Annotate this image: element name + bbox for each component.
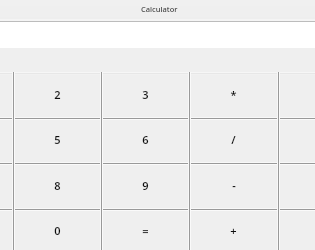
- button[interactable]: Key *: [189, 73, 278, 118]
- staticText: 9: [142, 178, 149, 193]
- staticText: 5: [54, 132, 61, 147]
- button[interactable]: Key 3: [101, 73, 189, 118]
- button[interactable]: Key 4: [0, 118, 13, 163]
- staticText: 3: [142, 87, 149, 102]
- staticText: 8: [54, 178, 61, 193]
- staticText: -: [232, 178, 236, 193]
- staticText: +: [230, 223, 237, 238]
- staticText: 0: [54, 223, 61, 238]
- button[interactable]: Key -: [189, 163, 278, 209]
- button[interactable]: Key 9: [101, 163, 189, 209]
- button[interactable]: Key +: [189, 209, 278, 250]
- staticText: /: [231, 132, 236, 147]
- button[interactable]: Key 8: [13, 163, 101, 209]
- button[interactable]: Key =: [101, 209, 189, 250]
- button[interactable]: Key /: [189, 118, 278, 163]
- button[interactable]: Key .: [0, 209, 13, 250]
- button[interactable]: Calculator: [0, 0, 315, 22]
- staticText: *: [230, 87, 237, 102]
- button[interactable]: Key 5: [13, 118, 101, 163]
- staticText: 6: [142, 132, 149, 147]
- button[interactable]: Key 0: [13, 209, 101, 250]
- staticText: =: [142, 223, 149, 238]
- button[interactable]: Key 7: [0, 163, 13, 209]
- button[interactable]: Key 2: [13, 73, 101, 118]
- button[interactable]: Key 6: [101, 118, 189, 163]
- staticText: Calculator: [141, 4, 178, 14]
- staticText: 2: [54, 87, 61, 102]
